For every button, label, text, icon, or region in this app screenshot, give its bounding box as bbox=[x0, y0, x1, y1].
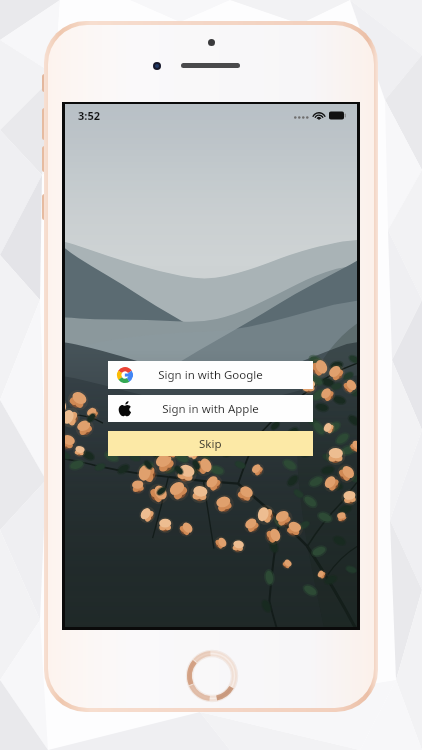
staticText: Sign in with Google bbox=[158, 367, 263, 383]
button[interactable]: Skip bbox=[108, 431, 313, 456]
staticText: Sign in with Apple bbox=[162, 401, 259, 417]
button[interactable]: Sign in with Google bbox=[108, 361, 313, 389]
staticText: 3:52 bbox=[78, 108, 100, 123]
button[interactable]: Home bbox=[185, 649, 239, 703]
staticText: Skip bbox=[199, 436, 222, 452]
button[interactable]: Sign in with Apple bbox=[108, 395, 313, 422]
